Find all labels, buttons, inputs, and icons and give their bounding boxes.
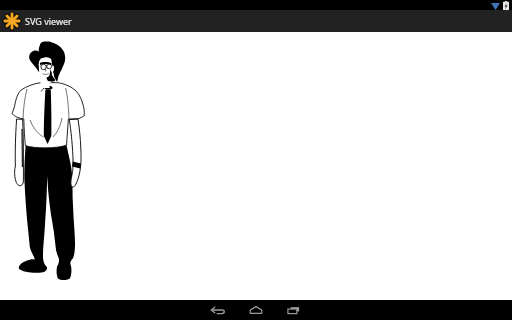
button[interactable]: Recent apps	[275, 300, 313, 320]
button[interactable]: SVG viewer	[0, 10, 512, 32]
button[interactable]: Back	[199, 300, 237, 320]
staticText: SVG viewer	[25, 15, 72, 27]
button[interactable]: Home	[237, 300, 275, 320]
